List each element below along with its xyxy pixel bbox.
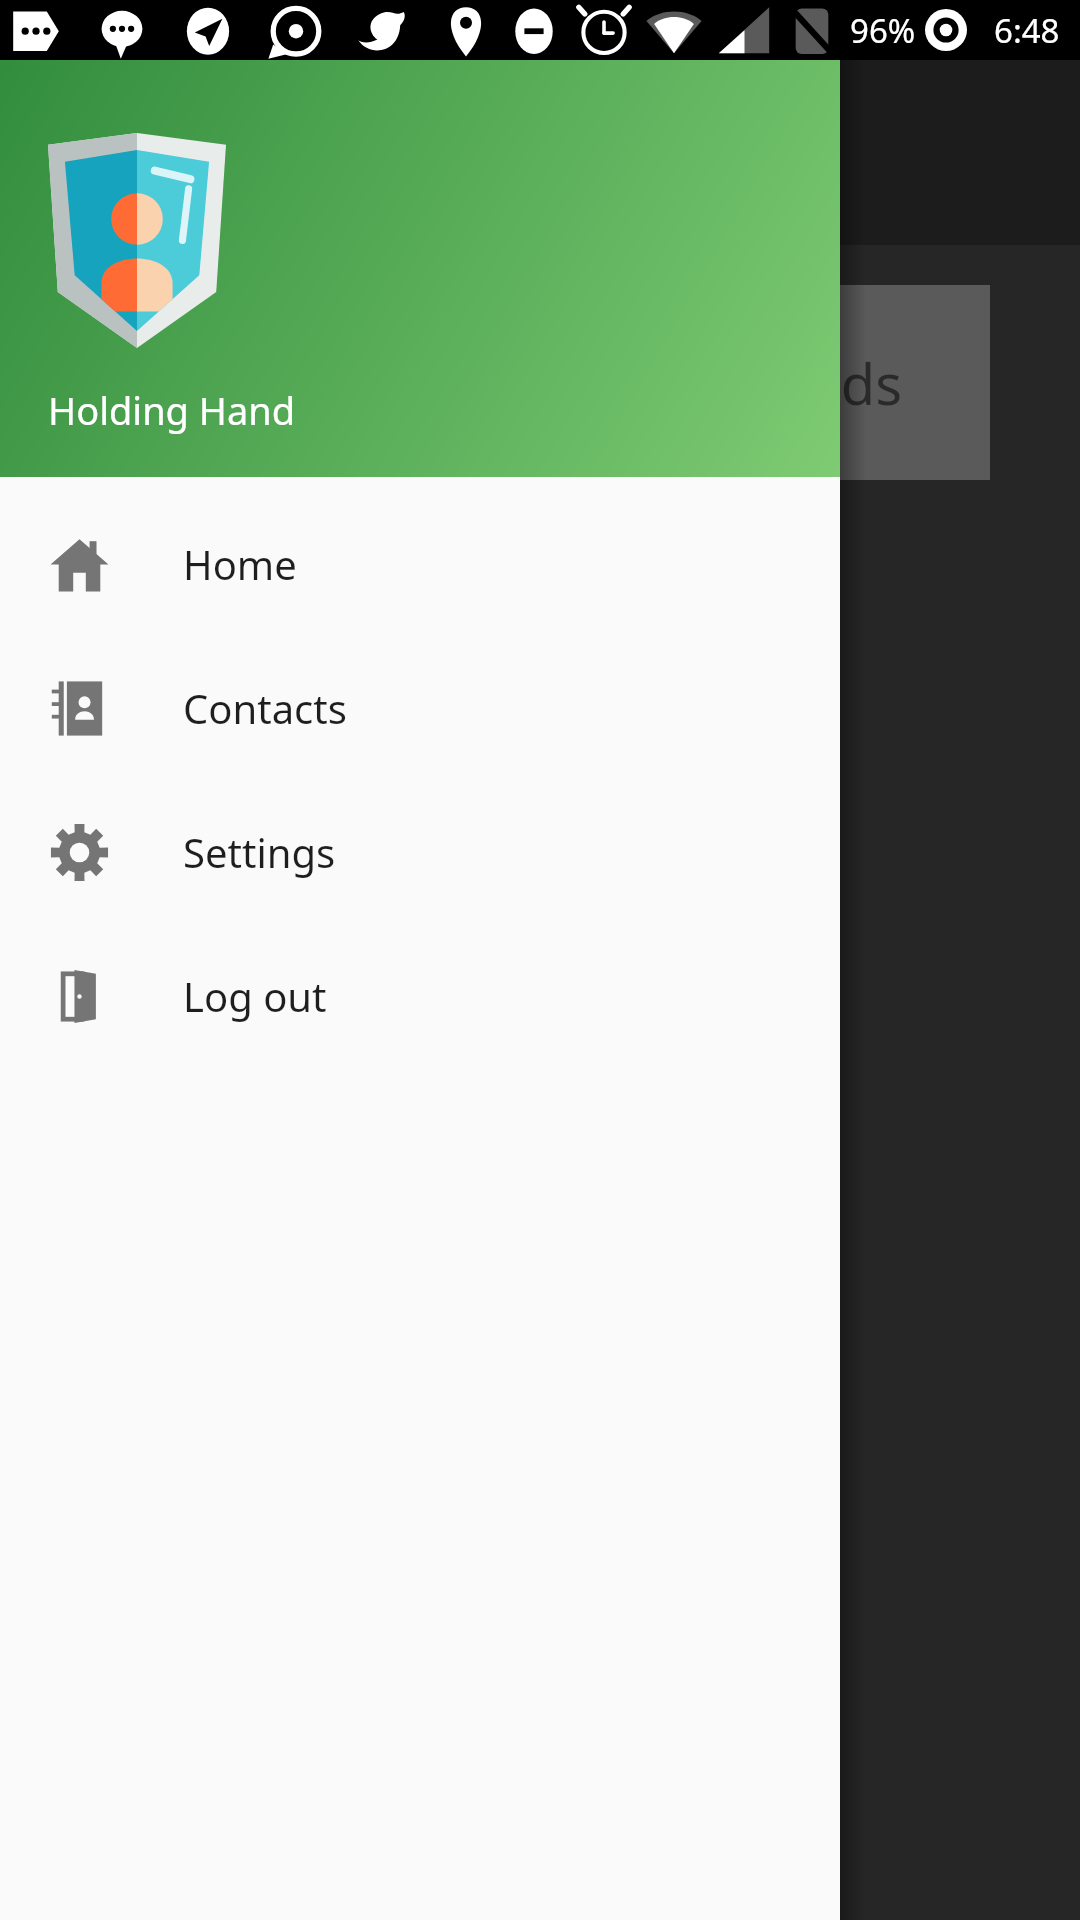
button[interactable]: Home <box>0 492 840 636</box>
button[interactable]: Settings <box>0 780 840 924</box>
staticText: 6:48 <box>994 8 1060 53</box>
button[interactable]: Log out <box>0 924 840 1068</box>
staticText: Friends <box>708 345 903 421</box>
staticText: Settings <box>183 825 336 879</box>
button[interactable]: Contacts <box>0 636 840 780</box>
staticText: Holding Hand <box>48 384 296 436</box>
staticText: Log out <box>183 969 327 1023</box>
staticText: Contacts <box>183 681 347 735</box>
staticText: Home <box>183 537 297 591</box>
staticText: 96% <box>850 8 916 53</box>
